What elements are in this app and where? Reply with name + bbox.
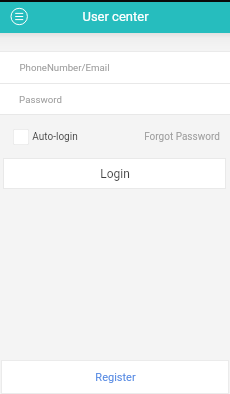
staticText: Password — [19, 94, 62, 105]
button[interactable]: Password — [0, 84, 230, 114]
button[interactable]: Forgot Password — [144, 131, 220, 143]
staticText: Login — [100, 167, 130, 181]
button[interactable]: PhoneNumber/Email — [0, 52, 230, 83]
button[interactable]: Register — [1, 360, 229, 394]
button[interactable]: Auto-login — [13, 129, 78, 145]
staticText: Forgot Password — [144, 131, 220, 143]
staticText: Auto-login — [32, 131, 78, 143]
button[interactable]: Login — [3, 158, 226, 189]
staticText: PhoneNumber/Email — [19, 62, 110, 73]
staticText: Register — [95, 371, 136, 384]
button[interactable]: Open navigation menu — [0, 2, 32, 33]
staticText: User center — [82, 9, 149, 24]
